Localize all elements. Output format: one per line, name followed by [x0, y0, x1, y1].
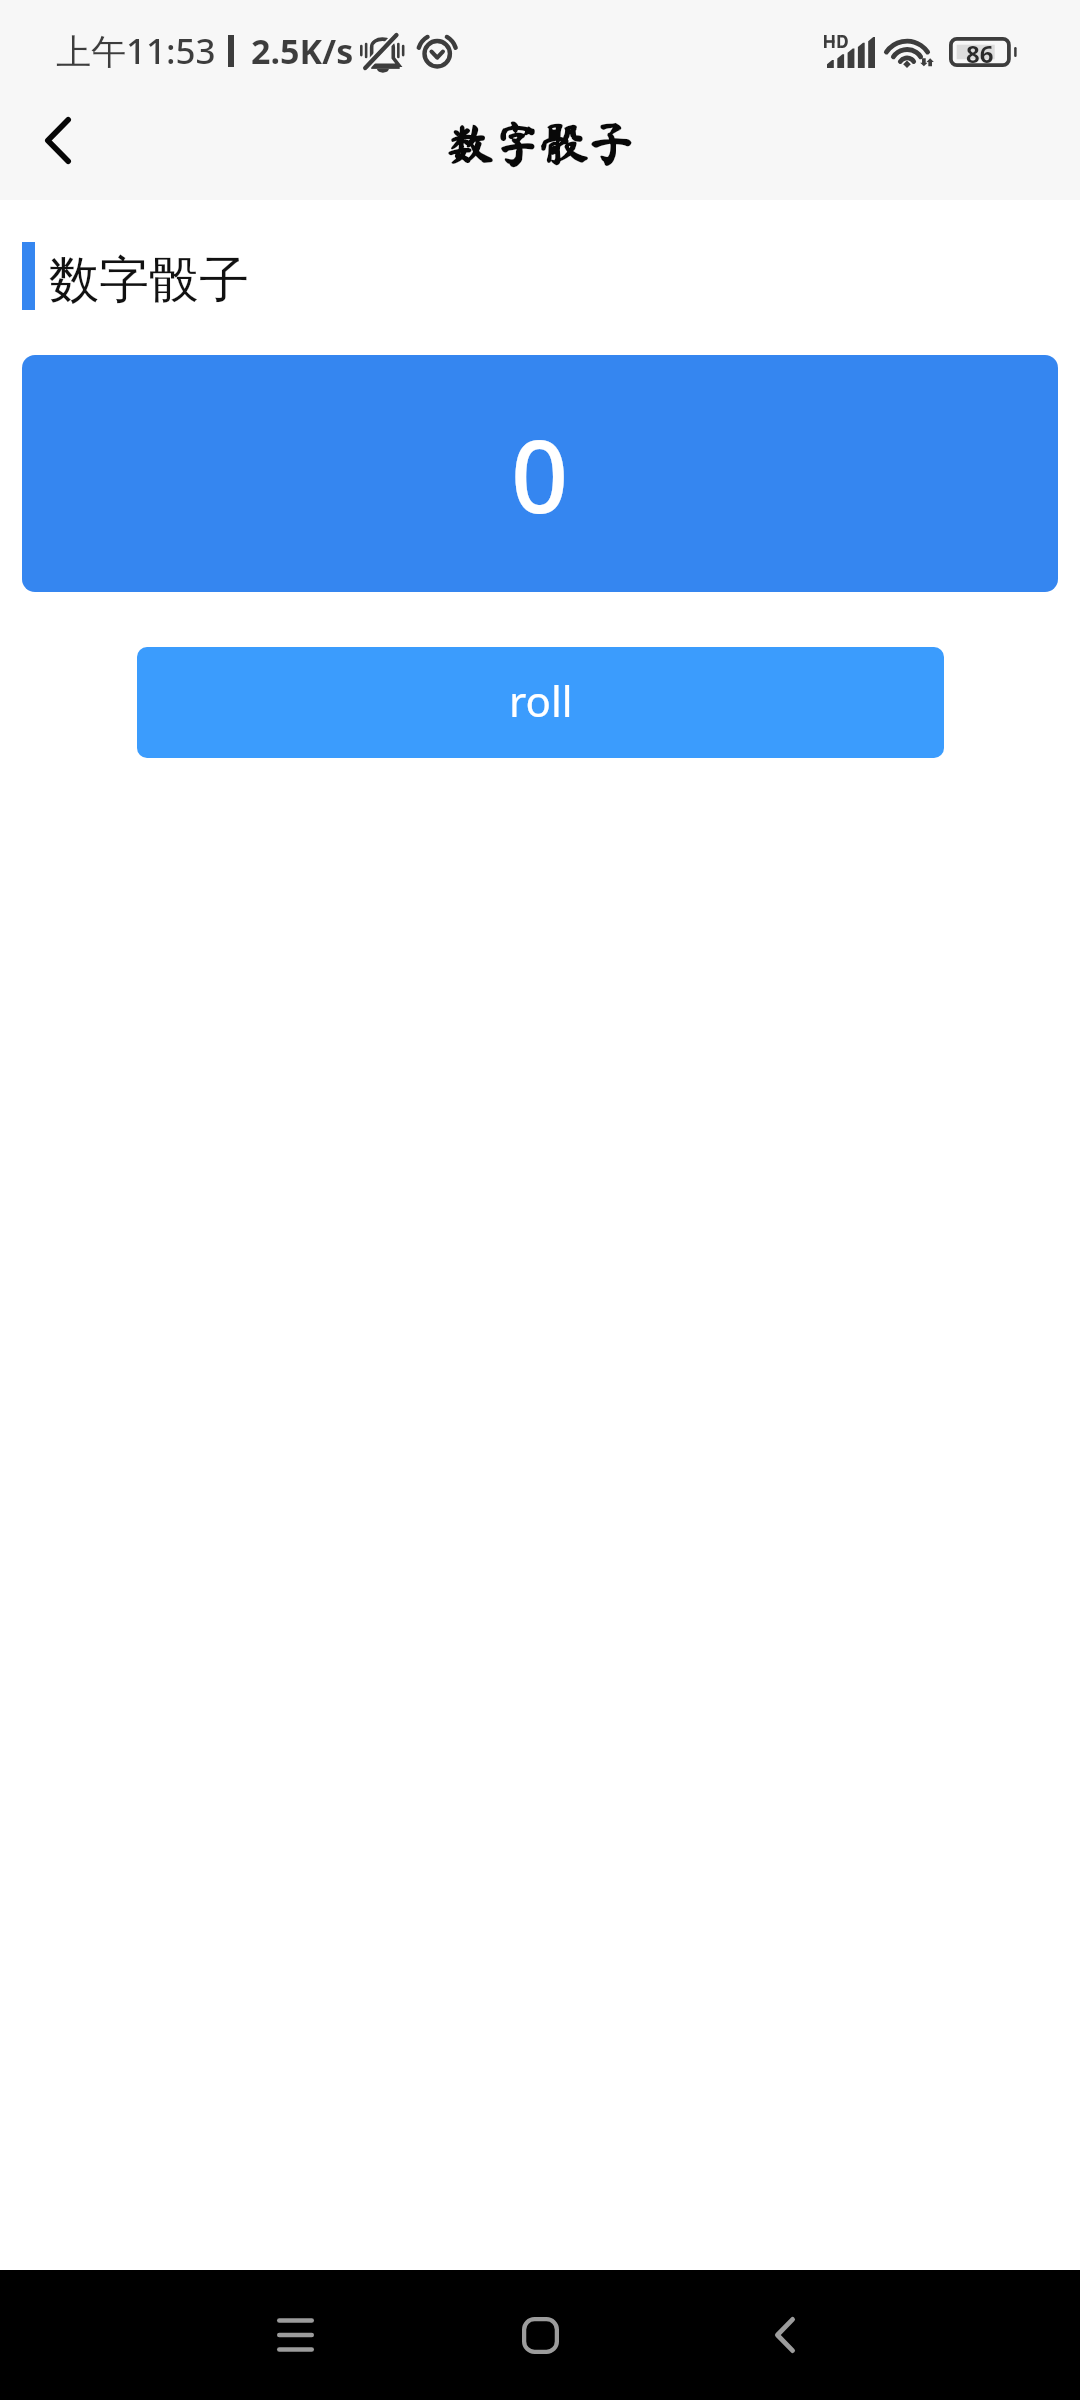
- button[interactable]: Home: [480, 2270, 600, 2400]
- button[interactable]: Back: [725, 2270, 845, 2400]
- staticText: roll: [509, 672, 573, 729]
- staticText: 上午11:53: [56, 27, 216, 75]
- button[interactable]: roll: [137, 647, 944, 758]
- staticText: 86: [966, 37, 994, 67]
- staticText: 2.5K/s: [251, 28, 354, 74]
- button[interactable]: Recent apps: [235, 2270, 355, 2400]
- staticText: 数字骰子: [446, 121, 634, 168]
- button[interactable]: Back: [0, 100, 118, 200]
- staticText: 0: [511, 406, 569, 542]
- staticText: 数字骰子: [49, 249, 249, 312]
- button[interactable]: 0: [22, 355, 1058, 592]
